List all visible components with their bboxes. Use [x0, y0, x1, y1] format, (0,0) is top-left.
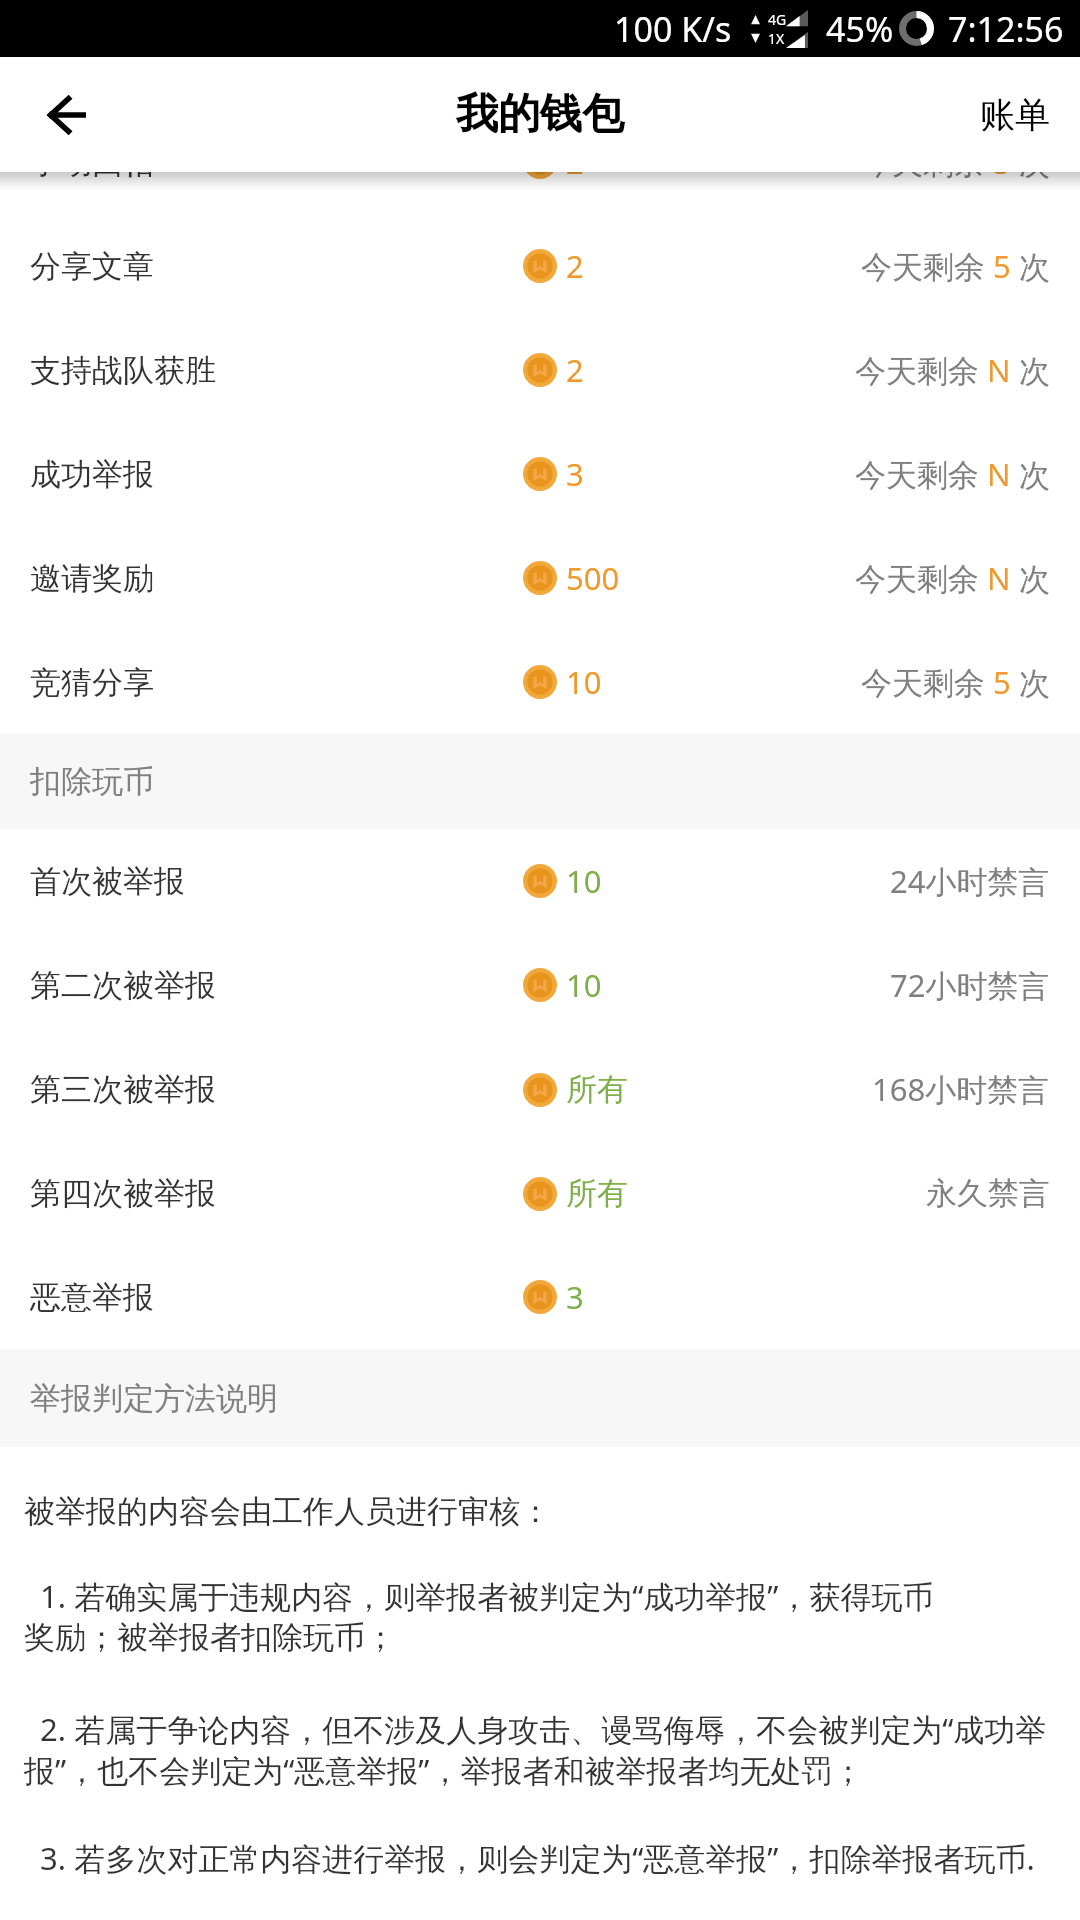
staticText: 4G	[768, 10, 787, 29]
staticText: 永久禁言	[926, 1174, 1050, 1213]
button[interactable]: 第四次被举报	[0, 1141, 1080, 1245]
button[interactable]: 支持战队获胜	[0, 318, 1080, 422]
button[interactable]: 成功举报	[0, 422, 1080, 526]
staticText: 所有	[566, 1070, 628, 1109]
staticText: 今天剩余 5 次	[861, 172, 1050, 183]
staticText: 第三次被举报	[30, 1070, 216, 1109]
staticText: 首次被举报	[30, 862, 185, 901]
staticText: 第二次被举报	[30, 966, 216, 1005]
staticText: 7:12:56	[948, 6, 1064, 52]
staticText: 45%	[826, 6, 894, 52]
staticText: 24小时禁言	[890, 860, 1050, 902]
staticText: 今天剩余 N 次	[855, 453, 1050, 495]
staticText: 所有	[566, 1174, 628, 1213]
staticText: 10	[566, 661, 602, 703]
staticText: 3	[566, 1276, 584, 1318]
staticText: 10	[566, 860, 602, 902]
staticText: 成功举报	[30, 455, 154, 494]
staticText: 3	[566, 453, 584, 495]
staticText: 分享文章	[30, 247, 154, 286]
staticText: 今天剩余 5 次	[861, 661, 1050, 703]
staticText: 扣除玩币	[30, 762, 154, 801]
button[interactable]: 分享文章	[0, 214, 1080, 318]
button[interactable]: 竞猜分享	[0, 630, 1080, 734]
staticText: 账单	[980, 93, 1050, 137]
staticText: 168小时禁言	[872, 1068, 1050, 1110]
staticText: 10	[566, 964, 602, 1006]
staticText: 支持战队获胜	[30, 351, 216, 390]
button[interactable]: 邀请奖励	[0, 526, 1080, 630]
button[interactable]: 第二次被举报	[0, 933, 1080, 1037]
button[interactable]: 第三次被举报	[0, 1037, 1080, 1141]
button[interactable]: 首次被举报	[0, 829, 1080, 933]
button[interactable]: Back	[25, 73, 109, 157]
staticText: 1. 若确实属于违规内容，则举报者被判定为“成功举报”，获得玩币 奖励；被举报者…	[24, 1575, 934, 1657]
staticText: 邀请奖励	[30, 559, 154, 598]
staticText: 恶意举报	[30, 1278, 154, 1317]
staticText: 100 K/s	[614, 6, 732, 52]
staticText: 举报判定方法说明	[30, 1379, 278, 1418]
staticText: 手动回帖	[30, 172, 154, 182]
staticText: 2	[566, 245, 584, 287]
staticText: 2. 若属于争论内容，但不涉及人身攻击、谩骂侮辱，不会被判定为“成功举 报”，也…	[24, 1708, 1047, 1792]
staticText: 今天剩余 N 次	[855, 349, 1050, 391]
staticText: 被举报的内容会由工作人员进行审核：	[24, 1492, 551, 1531]
staticText: 今天剩余 N 次	[855, 557, 1050, 599]
button[interactable]: 恶意举报	[0, 1245, 1080, 1349]
staticText: 3. 若多次对正常内容进行举报，则会判定为“恶意举报”，扣除举报者玩币.	[24, 1837, 1035, 1879]
staticText: 2	[566, 349, 584, 391]
button[interactable]: 手动回帖	[0, 172, 1080, 214]
staticText: 第四次被举报	[30, 1174, 216, 1213]
staticText: 今天剩余 5 次	[861, 245, 1050, 287]
staticText: 72小时禁言	[890, 964, 1050, 1006]
staticText: 1X	[768, 29, 785, 48]
staticText: 我的钱包	[456, 88, 624, 141]
staticText: 500	[566, 557, 620, 599]
staticText: 竞猜分享	[30, 663, 154, 702]
staticText: 2	[566, 172, 584, 183]
button[interactable]: 账单	[952, 67, 1080, 163]
